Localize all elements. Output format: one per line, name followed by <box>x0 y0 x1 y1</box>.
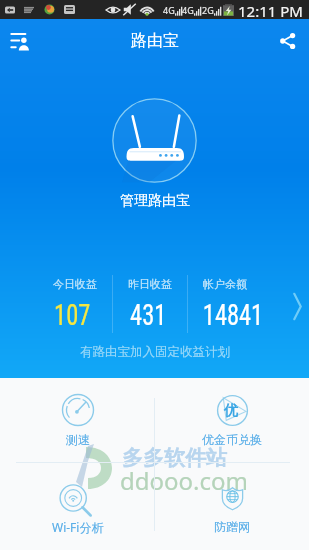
staticText: 有路由宝加入固定收益计划 <box>80 344 230 360</box>
staticText: 防蹭网 <box>214 519 250 534</box>
button[interactable]: Coin exchange <box>155 380 309 462</box>
staticText: 107 <box>54 297 91 332</box>
button[interactable]: 帐户余额 <box>187 277 262 337</box>
staticText: 多多软件站 <box>122 445 227 471</box>
staticText: 4G <box>182 4 194 16</box>
button[interactable]: 今日收益 <box>37 277 112 337</box>
staticText: 优金币兑换 <box>202 432 262 447</box>
staticText: 14841 <box>203 297 264 332</box>
staticText: Wi-Fi分析 <box>52 519 104 535</box>
staticText: 测速 <box>66 432 90 447</box>
staticText: 路由宝 <box>131 31 179 51</box>
staticText: 12:11 PM <box>238 1 303 20</box>
staticText: 今日收益 <box>53 277 97 291</box>
staticText: 优 <box>224 402 238 420</box>
button[interactable]: More earnings <box>288 291 306 321</box>
staticText: 帐户余额 <box>203 277 247 291</box>
button[interactable]: Wi-Fi analysis <box>0 466 155 550</box>
button[interactable]: Manage router <box>112 98 197 183</box>
staticText: 4G <box>163 4 175 16</box>
button[interactable]: Account <box>3 19 39 62</box>
button[interactable]: Speed test <box>0 380 155 462</box>
staticText: 2G <box>202 4 214 16</box>
button[interactable]: Share <box>269 19 305 62</box>
staticText: 管理路由宝 <box>120 192 190 210</box>
staticText: ddooo.com <box>120 464 248 497</box>
button[interactable]: 昨日收益 <box>112 277 187 337</box>
button[interactable]: Anti-freeloader <box>155 466 309 550</box>
staticText: 昨日收益 <box>128 277 172 291</box>
staticText: 431 <box>130 297 167 332</box>
